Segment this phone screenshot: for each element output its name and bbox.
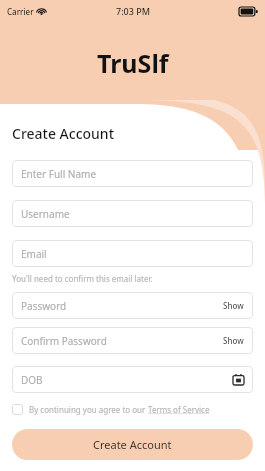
staticText: Email [21,247,47,261]
staticText: By continuing you agree to our [29,404,148,415]
staticText: You'll need to confirm this email later. [12,273,153,284]
button[interactable]: Confirm Password [12,327,253,354]
button[interactable]: Show [223,300,244,311]
button[interactable]: Username [12,200,253,227]
staticText: Confirm Password [21,334,107,348]
staticText: Username [21,207,70,221]
button[interactable]: Email [12,240,253,267]
button[interactable]: Pick date [233,374,244,385]
staticText: Create Account [93,437,172,452]
button[interactable]: Password [12,292,253,319]
staticText: TruSlf [97,46,169,80]
staticText: DOB [21,373,43,387]
staticText: Enter Full Name [21,167,97,181]
staticText: Password [21,299,67,313]
button[interactable]: Show [223,335,244,346]
staticText: Create Account [12,124,115,143]
button[interactable]: Enter Full Name [12,160,253,187]
button[interactable]: By continuing you agree to our [12,404,253,415]
button[interactable]: Create Account [12,429,253,460]
button[interactable]: DOB [12,366,253,393]
staticText: Carrier [7,6,34,17]
staticText: 7:03 PM [116,5,150,17]
button[interactable]: Terms of Service [148,404,210,415]
